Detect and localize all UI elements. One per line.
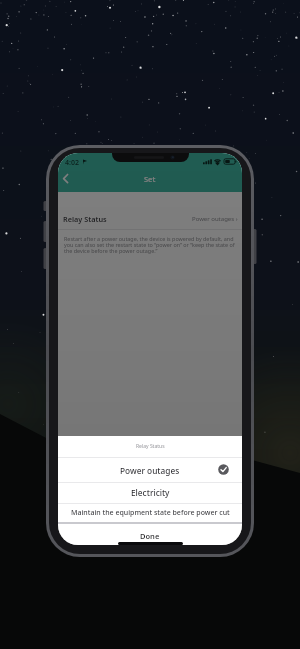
button[interactable]: Maintain the equipment state before powe… bbox=[58, 503, 242, 522]
staticText: Power outages bbox=[120, 465, 180, 476]
button[interactable]: Electricity bbox=[58, 482, 242, 503]
staticText: Restart after a power outage, the device… bbox=[64, 235, 235, 254]
button[interactable]: Power outages bbox=[58, 458, 242, 482]
staticText: Maintain the equipment state before powe… bbox=[71, 508, 230, 518]
staticText: Power outages › bbox=[192, 215, 238, 223]
button[interactable]: Relay Status bbox=[58, 192, 242, 230]
staticText: Electricity bbox=[131, 487, 170, 498]
staticText: 4:02 bbox=[65, 158, 79, 168]
staticText: Set bbox=[144, 174, 156, 184]
button[interactable] bbox=[58, 153, 78, 192]
staticText: Done bbox=[140, 531, 160, 541]
staticText: Relay Status bbox=[136, 443, 165, 450]
staticText: Relay Status bbox=[63, 214, 107, 224]
button[interactable]: Done bbox=[58, 528, 242, 544]
